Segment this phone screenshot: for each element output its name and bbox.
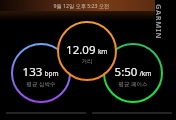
button[interactable]: Garmin activity summary <box>0 0 176 120</box>
